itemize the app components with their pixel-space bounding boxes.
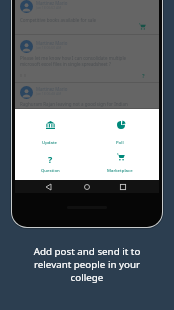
- button[interactable]: [46, 184, 51, 190]
- staticText: Update: [42, 139, 58, 145]
- staticText: ?: [142, 72, 145, 79]
- staticText: Please let me know how I can consolidate…: [20, 55, 127, 61]
- staticText: Martinez Mario: [36, 86, 68, 92]
- button[interactable]: [20, 112, 80, 145]
- staticText: Marketplace: [107, 167, 133, 173]
- staticText: Add post and send it to relevant people …: [0, 245, 174, 284]
- staticText: Question: [41, 167, 60, 173]
- button[interactable]: [84, 184, 90, 190]
- button[interactable]: [20, 147, 80, 177]
- staticText: Martinez Mario: [36, 40, 68, 46]
- button[interactable]: [90, 147, 150, 177]
- staticText: microsoft excel files in single spreadsh…: [20, 61, 111, 67]
- staticText: ?: [48, 153, 53, 165]
- staticText: Poll: [116, 139, 124, 145]
- staticText: Raghuram Rajan leaving not a good sign f…: [20, 101, 128, 107]
- staticText: Martinez Mario: [36, 0, 68, 6]
- staticText: 0 0: [20, 73, 26, 78]
- button[interactable]: [90, 112, 150, 145]
- button[interactable]: [120, 184, 126, 190]
- staticText: Competitive books available for sale: [20, 17, 97, 23]
